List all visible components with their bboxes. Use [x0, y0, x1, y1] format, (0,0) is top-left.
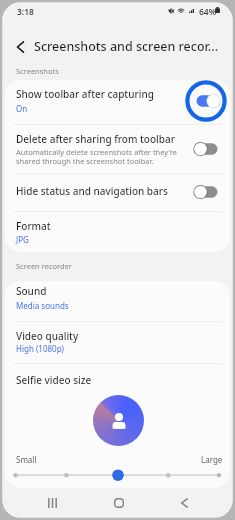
staticText: Media sounds — [16, 300, 69, 311]
staticText: Format — [16, 219, 51, 233]
staticText: Automatically delete screenshots after t… — [16, 147, 178, 157]
staticText: Video quality — [16, 329, 79, 343]
button[interactable]: Recent apps — [30, 489, 75, 517]
staticText: shared through the screenshot toolbar. — [16, 156, 154, 166]
staticText: Screen recorder — [16, 261, 72, 271]
button[interactable]: Home — [96, 489, 141, 517]
staticText: On — [16, 103, 28, 114]
staticText: Selfie video size — [16, 373, 92, 387]
staticText: Show toolbar after capturing — [16, 87, 154, 101]
button[interactable]: Switch on — [185, 80, 227, 122]
staticText: High (1080p) — [16, 343, 64, 354]
staticText: Hide status and navigation bars — [16, 184, 168, 198]
button[interactable]: Selfie preview — [93, 395, 144, 446]
staticText: 64% — [199, 6, 217, 18]
staticText: Sound — [16, 284, 47, 298]
button[interactable]: Navigate up — [7, 34, 33, 60]
button[interactable]: Back — [162, 489, 207, 517]
staticText: JPG — [16, 234, 29, 245]
staticText: Screenshots and screen recor... — [34, 38, 219, 55]
staticText: 3:18 — [17, 6, 34, 18]
button[interactable]: Switch off — [185, 171, 227, 213]
staticText: Screenshots — [16, 66, 59, 76]
staticText: Delete after sharing from toolbar — [16, 132, 175, 146]
button[interactable]: Switch off — [185, 128, 227, 170]
button[interactable]: Selfie video size slider — [0, 464, 235, 486]
staticText: Large — [201, 454, 223, 465]
staticText: Small — [16, 454, 37, 465]
